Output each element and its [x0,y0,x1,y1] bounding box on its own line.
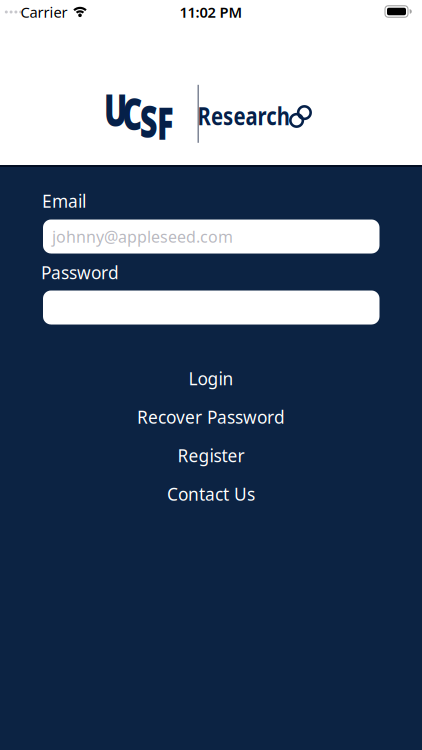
staticText: Carrier [20,2,67,22]
button[interactable]: Recover Password [0,398,422,436]
staticText: 11:02 PM [179,2,242,22]
staticText: Recover Password [137,405,285,428]
staticText: Password [41,261,119,284]
staticText: Register [177,444,244,467]
staticText: F [153,93,177,152]
button[interactable]: johnny@appleseed.com [43,219,379,253]
button[interactable]: Login [0,359,422,397]
staticText: Research [186,99,301,132]
staticText: Login [188,367,233,390]
staticText: C [118,84,147,142]
button[interactable]: Register [0,436,422,474]
staticText: Email [42,189,86,212]
staticText: U [99,80,132,139]
staticText: Contact Us [167,482,255,505]
button[interactable]: Contact Us [0,475,422,513]
button[interactable]: Password [43,290,379,324]
staticText: johnny@appleseed.com [52,226,233,247]
staticText: S [136,91,161,150]
